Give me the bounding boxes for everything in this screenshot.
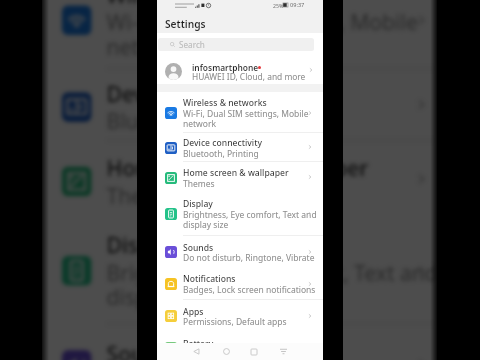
staticText: Device connectivity: [106, 80, 302, 110]
button[interactable]: Display: [42, 216, 437, 325]
staticText: Bluetooth, Printing: [106, 107, 295, 137]
staticText: Wireless & networks: [106, 0, 315, 10]
staticText: Settings: [165, 17, 206, 31]
staticText: HUAWEI ID, Cloud, and more: [192, 71, 306, 82]
staticText: Notifications: [183, 273, 236, 285]
staticText: Sounds: [183, 242, 214, 254]
button[interactable]: Hide navigation bar: [274, 343, 292, 360]
staticText: Themes: [106, 181, 186, 211]
staticText: infosmartphone: [192, 62, 259, 73]
staticText: Bluetooth, Printing: [183, 148, 259, 160]
button[interactable]: Device connectivity: [42, 70, 437, 142]
button[interactable]: Recent apps: [245, 343, 263, 360]
staticText: Badges, Lock screen notifications: [183, 284, 316, 296]
button[interactable]: Back: [187, 343, 205, 360]
button[interactable]: Apps: [157, 300, 323, 332]
staticText: Wi-Fi, Dual SIM settings, Mobile: [183, 108, 309, 120]
staticText: display size: [183, 219, 229, 231]
staticText: Permissions, Default apps: [183, 316, 287, 328]
button[interactable]: Home screen & wallpaper: [42, 142, 437, 219]
button[interactable]: Display: [157, 192, 323, 236]
staticText: network: [183, 118, 216, 130]
staticText: Themes: [183, 178, 215, 190]
staticText: Apps: [183, 306, 204, 318]
button[interactable]: Search: [158, 38, 314, 51]
staticText: Brightness, Eye comfort, Text and: [106, 258, 437, 288]
staticText: display size: [106, 283, 221, 313]
staticText: Home screen & wallpaper: [183, 167, 289, 179]
staticText: Display: [183, 198, 213, 210]
staticText: Power-saving: [183, 348, 237, 360]
button[interactable]: Home: [217, 343, 235, 360]
staticText: 25%: [273, 2, 284, 9]
staticText: 09:37: [290, 1, 305, 9]
button[interactable]: Wireless & networks: [157, 93, 323, 133]
button[interactable]: Home screen & wallpaper: [157, 162, 323, 193]
staticText: Sounds: [106, 340, 183, 360]
button[interactable]: Sounds: [42, 325, 437, 360]
button[interactable]: infosmartphone: [157, 56, 323, 84]
button[interactable]: Battery: [157, 332, 323, 360]
staticText: Wireless & networks: [183, 97, 267, 109]
staticText: Do not disturb, Ringtone, Vibrate: [183, 252, 315, 264]
staticText: Device connectivity: [183, 137, 262, 149]
staticText: Home screen & wallpaper: [106, 154, 369, 184]
staticText: network: [106, 33, 188, 62]
button[interactable]: Device connectivity: [157, 133, 323, 162]
staticText: Display: [106, 231, 181, 261]
staticText: Wi-Fi, Dual SIM settings, Mobile: [106, 8, 419, 38]
button[interactable]: Notifications: [157, 268, 323, 300]
staticText: Search: [179, 39, 205, 50]
staticText: Brightness, Eye comfort, Text and: [183, 209, 317, 221]
staticText: Battery: [183, 338, 214, 350]
button[interactable]: Sounds: [157, 236, 323, 268]
button[interactable]: Wireless & networks: [42, 0, 437, 70]
